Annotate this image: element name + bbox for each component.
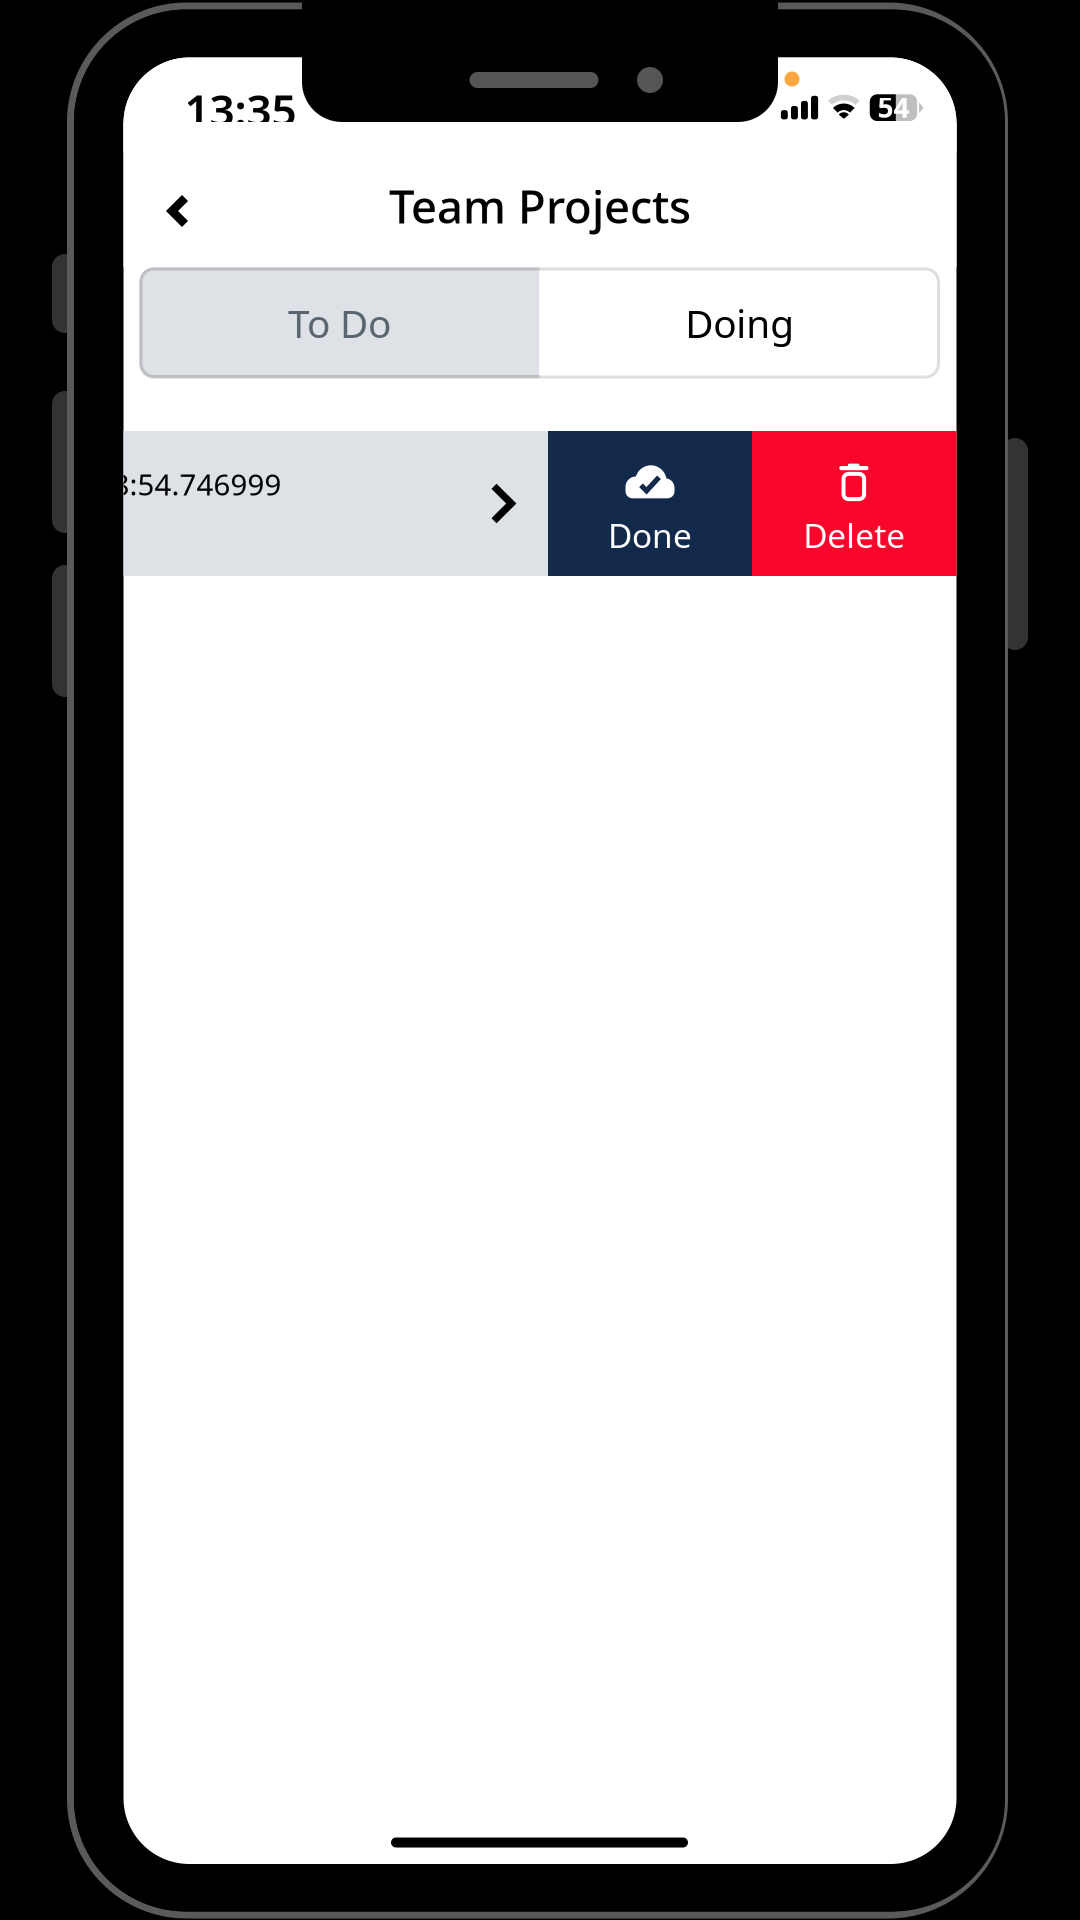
staticText: Done bbox=[608, 513, 692, 557]
button[interactable]: To Do bbox=[139, 267, 539, 378]
button[interactable]: Doing bbox=[539, 267, 940, 378]
staticText: Doing bbox=[685, 297, 794, 349]
staticText: Delete bbox=[803, 513, 905, 557]
staticText: 13:35 bbox=[184, 80, 296, 139]
button[interactable]: Delete bbox=[752, 431, 956, 576]
button[interactable]: Back bbox=[132, 163, 224, 259]
staticText: To Do bbox=[288, 297, 391, 349]
button[interactable]: Done bbox=[548, 431, 752, 576]
staticText: 8:54.746999 bbox=[112, 464, 281, 503]
button[interactable]: 8:54.746999 bbox=[123, 431, 548, 576]
staticText: Team Projects bbox=[389, 176, 691, 236]
staticText: 54 bbox=[877, 88, 909, 125]
